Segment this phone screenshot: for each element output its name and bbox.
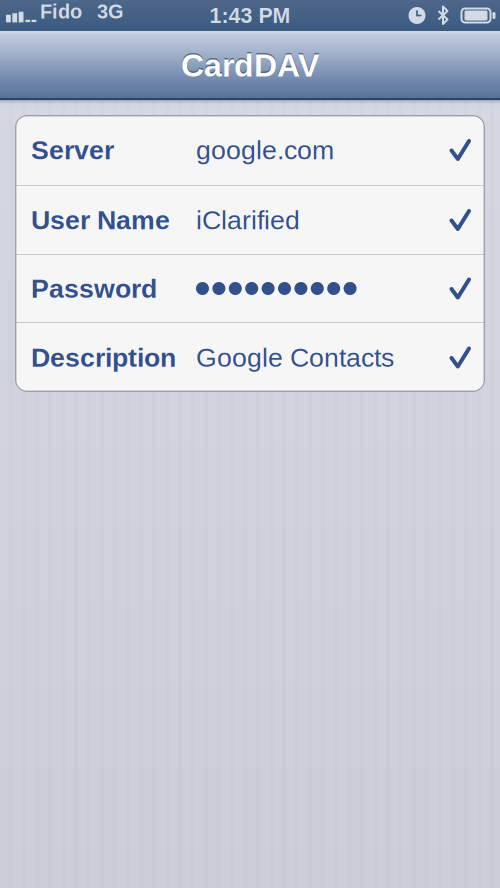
staticText: User Name xyxy=(31,205,170,235)
button[interactable]: Password xyxy=(15,255,485,322)
button[interactable]: Server xyxy=(15,115,485,185)
staticText: CardDAV xyxy=(181,46,319,82)
staticText: Description xyxy=(31,343,176,372)
staticText: Server xyxy=(31,135,114,165)
staticText: CardDAV xyxy=(181,48,319,83)
staticText: iClarified xyxy=(196,205,300,235)
button[interactable]: User Name xyxy=(15,186,485,254)
button[interactable]: Description xyxy=(15,323,485,392)
staticText: Fido xyxy=(40,0,82,23)
staticText: 3G xyxy=(97,0,124,23)
staticText: 1:43 PM xyxy=(209,4,290,27)
staticText: Google Contacts xyxy=(196,343,394,372)
staticText: Password xyxy=(31,274,157,303)
staticText: google.com xyxy=(196,135,334,165)
